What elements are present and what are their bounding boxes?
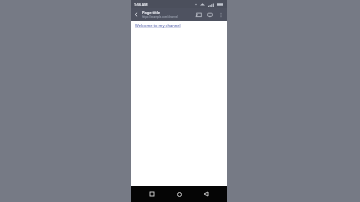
button[interactable]: Back (200, 188, 212, 200)
staticText: Welcome to my channel (135, 23, 181, 28)
staticText: 1:56 AM (134, 2, 148, 7)
button[interactable]: Back (131, 9, 142, 20)
button[interactable]: More options (215, 9, 226, 20)
button[interactable]: Recents (146, 188, 158, 200)
button[interactable]: Home (173, 188, 185, 200)
button[interactable]: Comments (204, 9, 215, 20)
button[interactable]: Cast (193, 9, 204, 20)
staticText: https://example.com/channel (142, 15, 178, 19)
staticText: Page title (142, 10, 161, 15)
button[interactable]: Welcome to my channel (135, 23, 181, 28)
